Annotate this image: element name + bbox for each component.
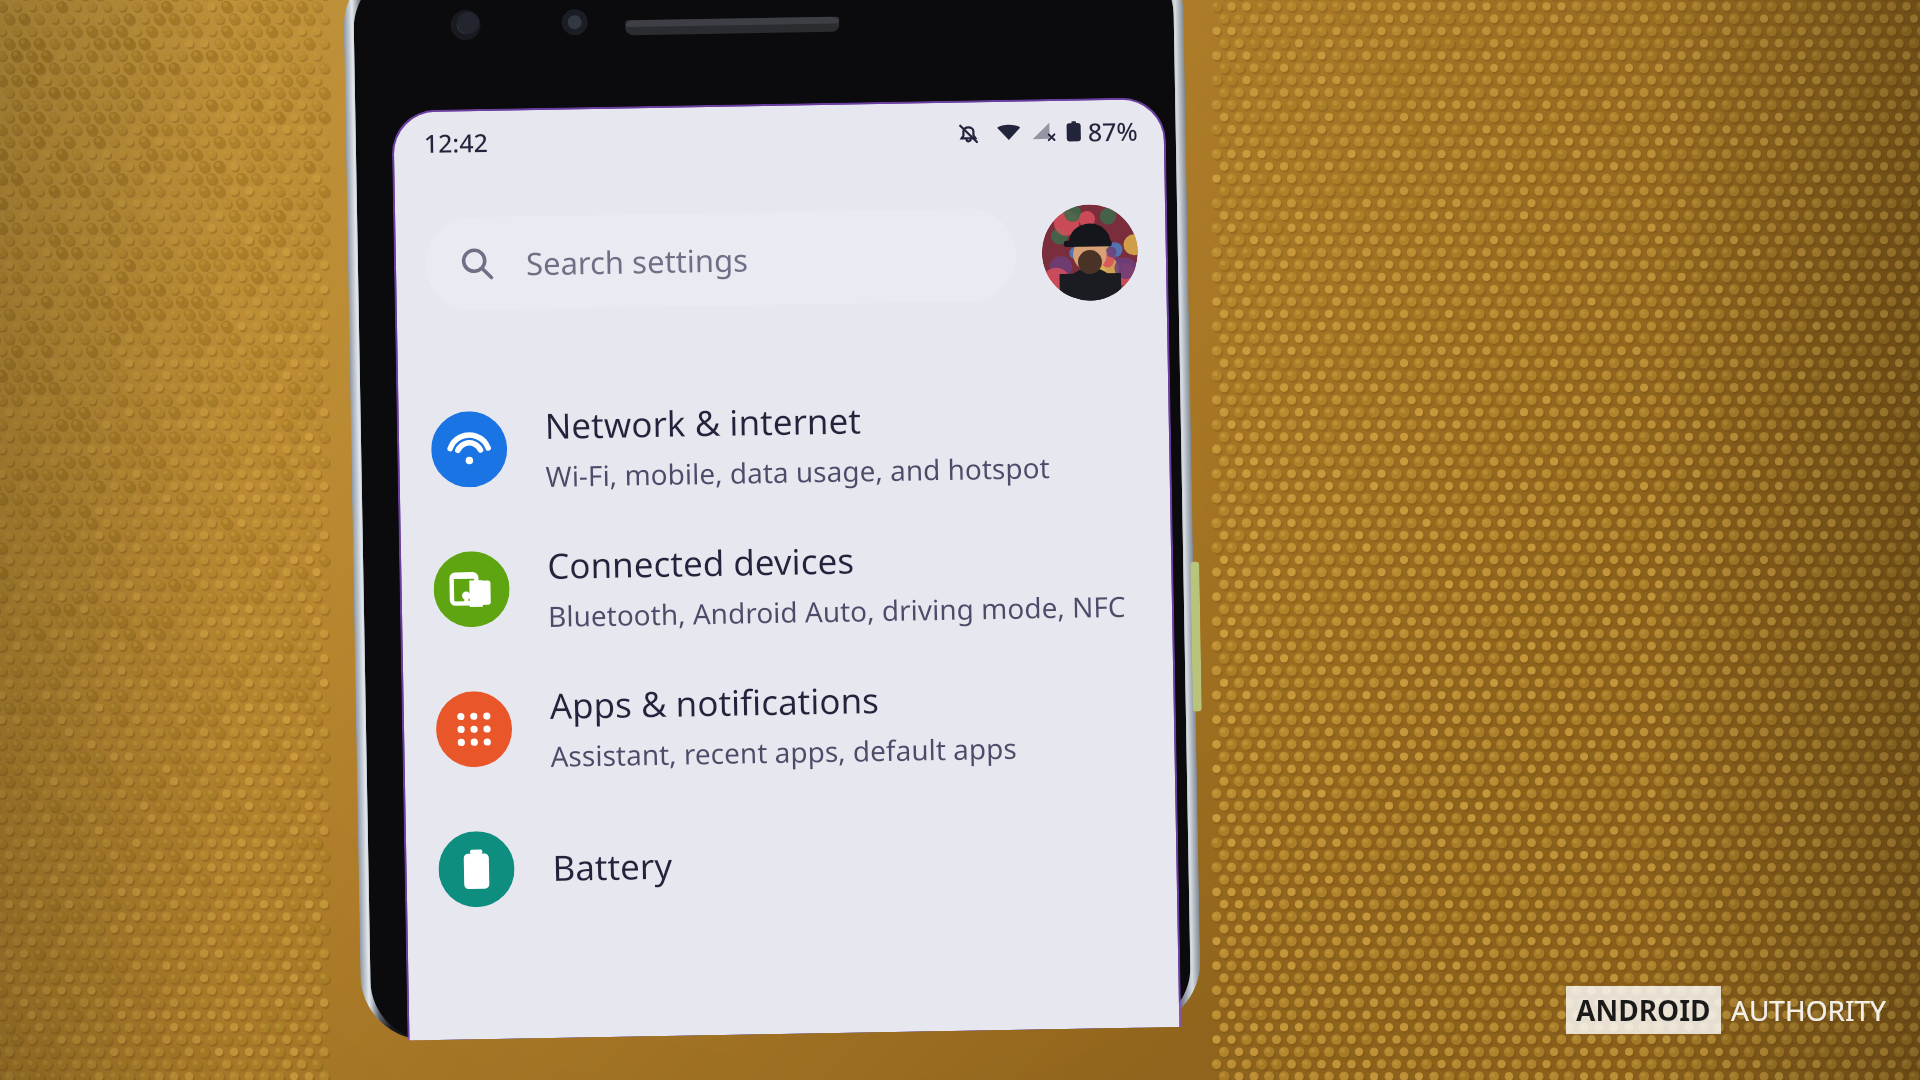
button[interactable]: Network & internet <box>398 367 1170 520</box>
staticText: ANDROID <box>1576 991 1711 1029</box>
staticText: 87% <box>1087 114 1138 148</box>
staticText: Network & internet <box>544 396 862 450</box>
staticText: Assistant, recent apps, default apps <box>550 729 1018 775</box>
button[interactable]: Account <box>1041 204 1139 301</box>
staticText: Apps & notifications <box>549 676 880 730</box>
button[interactable]: Battery <box>405 787 1178 940</box>
staticText: 12:42 <box>423 125 489 160</box>
button[interactable]: Search settings <box>425 208 1017 311</box>
staticText: Search settings <box>526 238 748 284</box>
staticText: AUTHORITY <box>1731 991 1886 1029</box>
staticText: Bluetooth, Android Auto, driving mode, N… <box>548 587 1126 635</box>
button[interactable]: Connected devices <box>400 507 1173 660</box>
staticText: Wi-Fi, mobile, data usage, and hotspot <box>545 448 1050 495</box>
button[interactable]: Apps & notifications <box>403 647 1175 800</box>
staticText: Battery <box>552 842 673 892</box>
staticText: Connected devices <box>547 537 855 590</box>
